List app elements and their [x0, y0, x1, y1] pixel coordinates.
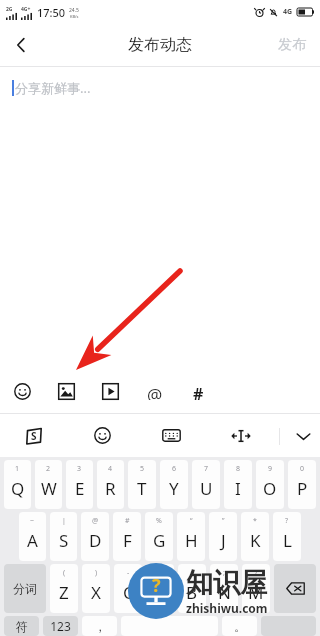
button[interactable]: / [242, 564, 270, 613]
button[interactable]: 5 [128, 460, 156, 509]
staticText: S [31, 429, 37, 443]
staticText: Q [11, 477, 25, 500]
staticText: ? [152, 573, 161, 598]
staticText: X [91, 581, 101, 604]
staticText: S [59, 529, 69, 552]
staticText: 7 [204, 464, 209, 474]
button[interactable]: Hide keyboard [290, 423, 316, 449]
staticText: ) [95, 568, 98, 578]
staticText: 4G [283, 7, 293, 17]
button[interactable]: ? [273, 512, 301, 561]
staticText: # [125, 516, 130, 526]
staticText: ( [63, 568, 66, 578]
button[interactable]: “ [177, 512, 205, 561]
button[interactable]: ) [82, 564, 110, 613]
button[interactable]: - [114, 564, 142, 613]
staticText: 3 [77, 464, 82, 474]
staticText: W [41, 477, 57, 500]
button[interactable]: 分词 [4, 564, 46, 613]
button[interactable]: 。 [222, 616, 257, 636]
staticText: I [235, 477, 241, 500]
staticText: T [137, 477, 147, 500]
staticText: B [186, 581, 198, 604]
button[interactable]: 1 [4, 460, 31, 509]
button[interactable]: Input method [0, 414, 68, 457]
button[interactable]: ; [210, 564, 238, 613]
staticText: : [191, 568, 193, 578]
button[interactable]: | [50, 512, 77, 561]
staticText: 2 [46, 464, 51, 474]
button[interactable]: 6 [160, 460, 188, 509]
staticText: V [155, 581, 166, 604]
button[interactable]: Emoji panel [68, 414, 137, 457]
staticText: 4 [108, 464, 113, 474]
staticText: 发布动态 [128, 35, 192, 55]
button[interactable]: % [145, 512, 173, 561]
button[interactable]: * [241, 512, 269, 561]
button[interactable]: 符 [4, 616, 39, 636]
button[interactable]: ~ [19, 512, 46, 561]
button[interactable]: ” [209, 512, 237, 561]
staticText: @ [147, 383, 163, 400]
staticText: L [283, 529, 292, 552]
staticText: KB/s [70, 14, 79, 19]
button[interactable]: 9 [256, 460, 284, 509]
staticText: ; [223, 568, 225, 578]
staticText: ? [285, 516, 289, 526]
button[interactable]: 123 [43, 616, 78, 636]
staticText: K [250, 529, 261, 552]
button[interactable]: Backspace [274, 564, 316, 613]
staticText: 123 [50, 618, 71, 634]
button[interactable]: _ [146, 564, 174, 613]
button[interactable] [121, 616, 218, 636]
button[interactable]: @ [81, 512, 109, 561]
staticText: 4G+ [21, 6, 31, 13]
button[interactable]: : [178, 564, 206, 613]
button[interactable]: Keyboard layout [137, 414, 206, 457]
staticText: / [255, 568, 258, 578]
button[interactable]: 0 [288, 460, 316, 509]
staticText: H [185, 529, 198, 552]
button[interactable]: ， [82, 616, 117, 636]
staticText: 17:50 [37, 5, 66, 20]
staticText: 分享新鲜事... [15, 79, 91, 97]
button[interactable]: Video [88, 369, 132, 413]
button[interactable]: Mention [132, 369, 176, 413]
staticText: | [62, 516, 66, 526]
button[interactable]: 4 [97, 460, 124, 509]
staticText: 分词 [13, 581, 37, 596]
staticText: 9 [268, 464, 273, 474]
button[interactable]: Emoji [0, 369, 44, 413]
staticText: ， [94, 619, 106, 634]
staticText: 2G [6, 6, 13, 13]
staticText: - [127, 568, 130, 578]
staticText: 6 [172, 464, 177, 474]
staticText: U [200, 477, 213, 500]
staticText: 。 [234, 619, 246, 634]
staticText: D [89, 529, 102, 552]
staticText: # [193, 383, 204, 400]
button[interactable]: Image [44, 369, 88, 413]
staticText: _ [158, 568, 162, 578]
staticText: C [123, 581, 134, 604]
button[interactable]: # [113, 512, 141, 561]
staticText: ” [222, 516, 225, 526]
button[interactable]: 8 [224, 460, 252, 509]
staticText: A [27, 529, 38, 552]
button[interactable]: Back [0, 24, 42, 66]
button[interactable]: 分享新鲜事... [0, 67, 320, 369]
button[interactable]: 3 [66, 460, 93, 509]
button[interactable]: 2 [35, 460, 62, 509]
staticText: Z [59, 581, 69, 604]
button[interactable]: 发布 [264, 26, 320, 64]
button[interactable]: Topic [176, 369, 220, 413]
button[interactable]: 7 [192, 460, 220, 509]
staticText: R [105, 477, 116, 500]
staticText: G [153, 529, 166, 552]
button[interactable]: ( [50, 564, 78, 613]
staticText: zhishiwu.com [186, 600, 268, 616]
staticText: Y [169, 477, 179, 500]
staticText: ~ [30, 516, 35, 526]
button[interactable]: Move cursor [206, 414, 275, 457]
